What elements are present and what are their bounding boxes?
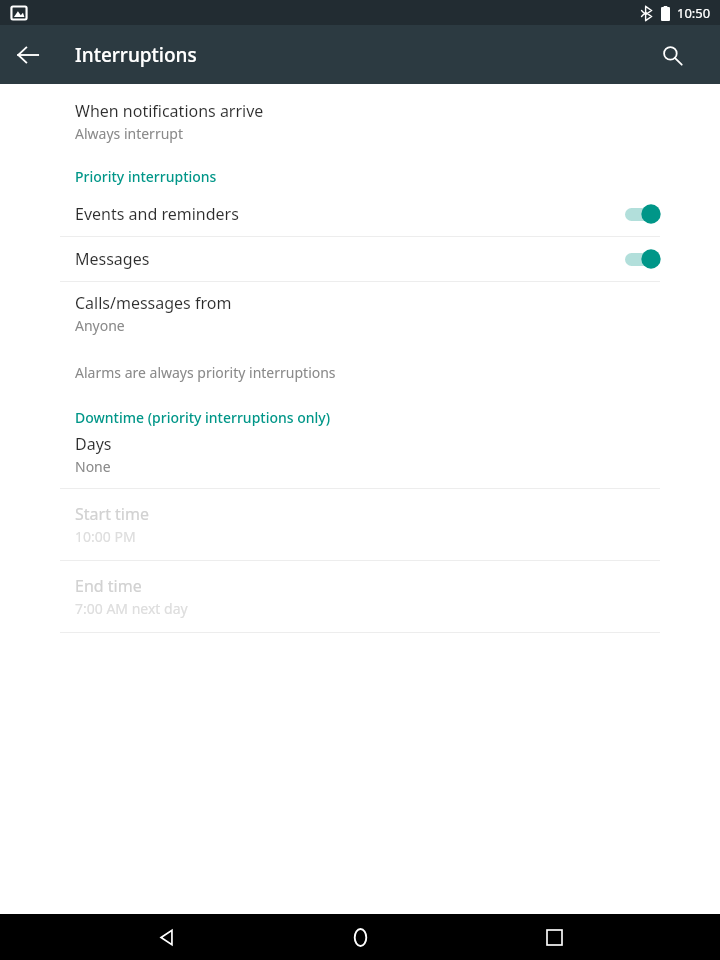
staticText: Anyone bbox=[75, 316, 125, 335]
button[interactable]: Days bbox=[0, 433, 720, 476]
staticText: Downtime (priority interruptions only) bbox=[75, 408, 331, 427]
staticText: Interruptions bbox=[75, 42, 197, 68]
button[interactable]: Messages bbox=[0, 237, 720, 281]
staticText: End time bbox=[75, 575, 142, 597]
button[interactable]: End time bbox=[0, 561, 720, 632]
staticText: Messages bbox=[75, 248, 624, 270]
staticText: 10:00 PM bbox=[75, 527, 136, 546]
button[interactable]: Start time bbox=[0, 489, 720, 560]
staticText: 7:00 AM next day bbox=[75, 599, 188, 618]
button[interactable]: Events and reminders bbox=[0, 192, 720, 236]
staticText: 10:50 bbox=[677, 4, 711, 22]
staticText: Start time bbox=[75, 503, 149, 525]
button[interactable]: Home bbox=[332, 914, 388, 960]
staticText: When notifications arrive bbox=[75, 100, 264, 122]
button[interactable]: Back bbox=[4, 31, 52, 79]
staticText: Alarms are always priority interruptions bbox=[75, 363, 336, 382]
button[interactable]: When notifications arrive bbox=[0, 100, 720, 143]
staticText: Priority interruptions bbox=[75, 167, 217, 186]
button[interactable]: Back bbox=[138, 914, 194, 960]
button[interactable]: Calls/messages from bbox=[0, 292, 720, 335]
button[interactable]: Recent apps bbox=[526, 914, 582, 960]
staticText: Always interrupt bbox=[75, 124, 183, 143]
staticText: None bbox=[75, 457, 111, 476]
staticText: Events and reminders bbox=[75, 203, 624, 225]
staticText: Days bbox=[75, 433, 112, 455]
button[interactable]: Search bbox=[649, 32, 695, 78]
staticText: Calls/messages from bbox=[75, 292, 232, 314]
